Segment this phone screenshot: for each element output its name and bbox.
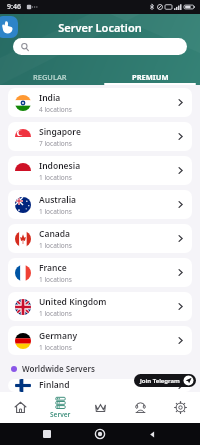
staticText: 1 locations — [39, 343, 72, 352]
staticText: Worldwide Servers — [22, 363, 95, 374]
button[interactable]: Settings — [160, 392, 200, 423]
staticText: Germany — [39, 330, 78, 342]
staticText: Australia — [39, 194, 77, 206]
button[interactable]: Join Telegram — [134, 374, 196, 387]
button[interactable]: France — [8, 258, 192, 287]
button[interactable]: Singapore — [8, 122, 192, 151]
staticText: Canada — [39, 228, 71, 240]
staticText: 1 locations — [39, 309, 72, 318]
staticText: Finland — [39, 379, 70, 391]
staticText: France — [39, 262, 67, 274]
button[interactable]: Germany — [8, 326, 192, 355]
staticText: Indonesia — [39, 160, 81, 172]
button[interactable]: Premium — [80, 392, 120, 423]
staticText: United Kingdom — [39, 296, 107, 308]
button[interactable] — [13, 38, 187, 55]
staticText: 9:46 — [7, 2, 21, 12]
button[interactable]: Server — [40, 392, 80, 423]
staticText: Singapore — [39, 126, 81, 138]
button[interactable]: United Kingdom — [8, 292, 192, 321]
button[interactable]: Canada — [8, 224, 192, 253]
button[interactable]: App logo — [0, 16, 18, 38]
staticText: 1 locations — [39, 207, 72, 216]
button[interactable]: India — [8, 88, 192, 117]
staticText: Server Location — [58, 20, 142, 35]
button[interactable]: PREMIUM — [100, 69, 200, 85]
button[interactable]: Australia — [8, 190, 192, 219]
staticText: 4 locations — [39, 105, 72, 114]
button[interactable]: Indonesia — [8, 156, 192, 185]
staticText: Server — [50, 410, 71, 419]
staticText: PREMIUM — [132, 72, 169, 82]
staticText: Join Telegram — [140, 377, 180, 385]
staticText: 1 locations — [39, 241, 72, 250]
button[interactable]: Finland — [8, 379, 192, 392]
staticText: REGULAR — [33, 72, 67, 82]
button[interactable]: Support — [120, 392, 160, 423]
staticText: India — [39, 92, 61, 104]
staticText: 1 locations — [39, 173, 72, 182]
staticText: 7 locations — [39, 139, 72, 148]
button[interactable]: REGULAR — [0, 69, 100, 85]
staticText: 1 locations — [39, 275, 72, 284]
button[interactable]: Home — [0, 392, 40, 423]
